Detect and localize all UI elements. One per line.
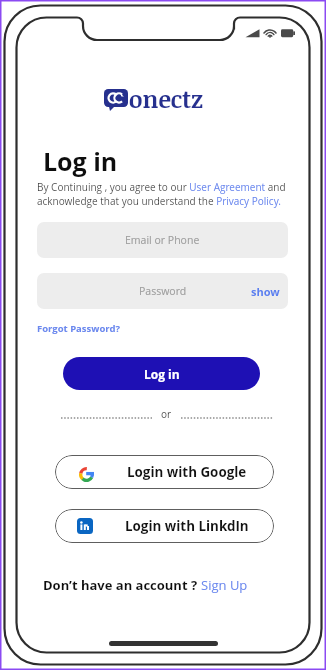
staticText: onectz	[129, 83, 203, 115]
button[interactable]: Email or Phone	[37, 222, 288, 258]
button[interactable]: show	[251, 284, 280, 299]
button[interactable]: Log in	[63, 357, 260, 390]
button[interactable]: Login with Google	[55, 455, 274, 489]
staticText: Log in	[43, 144, 118, 178]
staticText: Email or Phone	[125, 233, 200, 247]
staticText: or	[161, 407, 172, 421]
button[interactable]: Login with LinkdIn	[55, 509, 274, 543]
staticText: Password	[139, 284, 187, 298]
staticText: By Continuing , you agree to our User Ag…	[37, 180, 286, 194]
staticText: Log in	[144, 366, 180, 382]
button[interactable]: Sign Up	[201, 576, 248, 594]
button[interactable]: Password	[37, 273, 288, 309]
button[interactable]: Forgot Password?	[37, 322, 120, 335]
staticText: Login with LinkdIn	[125, 517, 249, 535]
staticText: acknowledge that you understand the Priv…	[37, 194, 281, 208]
staticText: Don’t have an account ?	[43, 576, 201, 594]
staticText: Login with Google	[127, 463, 247, 481]
